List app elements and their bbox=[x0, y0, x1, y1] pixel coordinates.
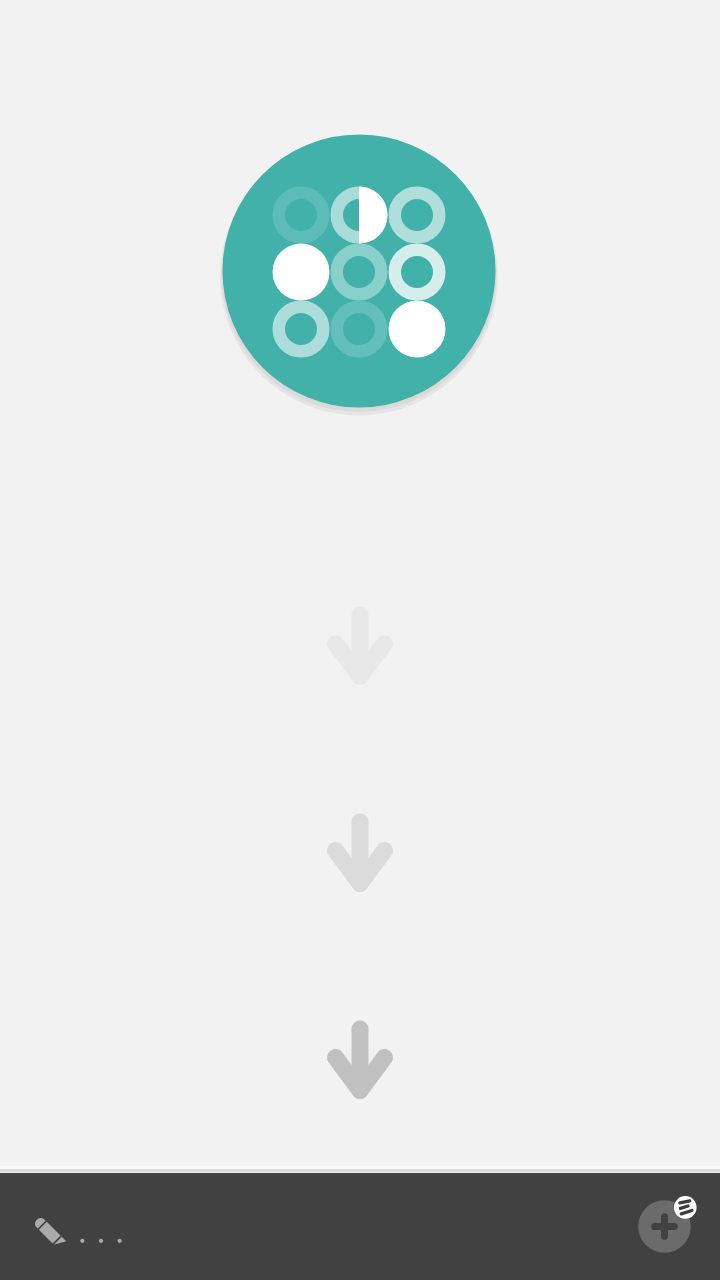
button[interactable]: Add note bbox=[632, 1201, 698, 1267]
button[interactable]: Edit bbox=[20, 1203, 76, 1259]
button[interactable]: More options bbox=[68, 1204, 116, 1252]
